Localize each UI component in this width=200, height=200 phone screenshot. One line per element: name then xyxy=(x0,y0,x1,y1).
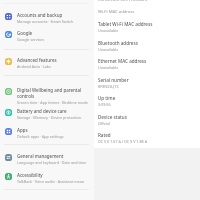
button[interactable]: Advanced features xyxy=(0,55,94,73)
button[interactable]: Accounts and backup xyxy=(0,10,94,28)
staticText: Digital Wellbeing and parental xyxy=(17,87,82,93)
staticText: Rated xyxy=(98,132,111,138)
staticText: DC 5 V 1.67 A / DC 9 V 1.88 A xyxy=(98,139,147,144)
staticText: Tablet Wi-Fi MAC address xyxy=(98,21,153,27)
button[interactable]: Digital Wellbeing and parental xyxy=(0,85,94,106)
staticText: Storage · Memory · Device protection xyxy=(17,115,82,120)
staticText: 3:09:56 xyxy=(98,102,111,107)
staticText: Unavailable xyxy=(98,28,119,33)
button[interactable]: Rated xyxy=(94,129,200,147)
staticText: Advanced features xyxy=(17,57,57,63)
staticText: RF8N33LJ1X xyxy=(98,84,119,89)
staticText: Default apps · App settings xyxy=(17,134,64,139)
staticText: Official xyxy=(98,121,111,126)
staticText: controls xyxy=(17,93,35,99)
staticText: Battery and device care xyxy=(17,108,67,114)
button[interactable]: Accessibility xyxy=(0,170,94,188)
staticText: Android Auto · Labs xyxy=(17,64,51,69)
staticText: Up time xyxy=(98,95,116,101)
button[interactable]: Up time xyxy=(94,92,200,110)
staticText: Accessibility xyxy=(17,172,43,178)
button[interactable]: Battery and device care xyxy=(0,106,94,124)
button[interactable]: Tablet Wi-Fi MAC address xyxy=(94,18,200,36)
staticText: Wi-Fi MAC address xyxy=(98,9,135,15)
staticText: Screen time · App timers · Bedtime mode xyxy=(17,100,88,105)
staticText: Manage accounts · Smart Switch xyxy=(17,19,74,24)
staticText: Accounts and backup xyxy=(17,12,63,18)
button[interactable]: Google xyxy=(0,28,94,46)
button[interactable]: Ethernet MAC address xyxy=(94,55,200,73)
button[interactable]: Serial number xyxy=(94,74,200,92)
staticText: Serial number xyxy=(98,77,129,83)
staticText: Google xyxy=(17,30,33,36)
staticText: TalkBack · Voice audio · Assistant menu xyxy=(17,179,85,184)
staticText: Bluetooth address xyxy=(98,40,138,46)
staticText: Ethernet MAC address xyxy=(98,58,147,64)
staticText: Unavailable xyxy=(98,65,119,70)
staticText: Device status xyxy=(98,114,127,120)
staticText: Connected Wi-Fi network xyxy=(98,0,148,3)
staticText: Unavailable xyxy=(98,47,119,52)
staticText: Language and keyboard · Date and time xyxy=(17,160,87,165)
button[interactable]: Device status xyxy=(94,111,200,129)
button[interactable]: Apps xyxy=(0,125,94,143)
staticText: Google services xyxy=(17,37,45,42)
staticText: General management xyxy=(17,153,64,159)
staticText: Apps xyxy=(17,127,28,133)
button[interactable]: General management xyxy=(0,151,94,169)
button[interactable]: Bluetooth address xyxy=(94,37,200,55)
